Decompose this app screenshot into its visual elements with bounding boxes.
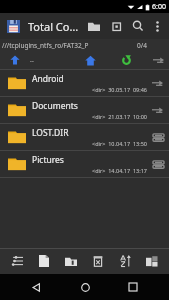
button[interactable]: Home: [72, 274, 98, 300]
button[interactable]: LOST.DIR: [0, 123, 169, 150]
staticText: ///tcplugins_ntfs_ro/FAT32_P: [2, 41, 89, 50]
button[interactable]: New folder: [59, 249, 83, 273]
button[interactable]: Back: [23, 274, 49, 300]
button[interactable]: [4, 17, 22, 35]
button[interactable]: Panels: [140, 249, 164, 273]
button[interactable]: New file: [32, 249, 56, 273]
button[interactable]: Select: [105, 15, 127, 37]
button[interactable]: Delete: [86, 249, 110, 273]
button[interactable]: Search: [127, 15, 149, 37]
button[interactable]: Documents: [0, 96, 169, 123]
staticText: 0/4: [137, 41, 147, 50]
staticText: Android: [32, 73, 64, 85]
button[interactable]: ///tcplugins_ntfs_ro/FAT32_P: [0, 39, 169, 51]
staticText: Documents: [32, 100, 78, 112]
staticText: LOST.DIR: [32, 127, 69, 139]
button[interactable]: More options: [149, 18, 165, 34]
button[interactable]: Folder: [83, 15, 105, 37]
button[interactable]: Refresh: [117, 51, 135, 69]
staticText: <dir> 21.03.17 10:00: [92, 113, 147, 120]
button[interactable]: Open drive: [151, 52, 167, 68]
button[interactable]: Home: [81, 51, 99, 69]
staticText: Total Com…: [28, 19, 83, 34]
button[interactable]: Options: [5, 249, 29, 273]
staticText: <dir> 30.05.17 09:46: [92, 86, 147, 93]
button[interactable]: Sort: [113, 249, 137, 273]
staticText: ..: [30, 55, 34, 65]
button[interactable]: Pictures: [0, 150, 169, 177]
button[interactable]: Up: [6, 51, 24, 69]
staticText: <dir> 14.04.17 13:17: [92, 167, 147, 174]
staticText: 6:00: [152, 2, 166, 12]
button[interactable]: Android: [0, 69, 169, 96]
button[interactable]: Recents: [120, 274, 146, 300]
staticText: <dir> 10.04.17 13:50: [92, 140, 147, 147]
staticText: Pictures: [32, 154, 64, 166]
